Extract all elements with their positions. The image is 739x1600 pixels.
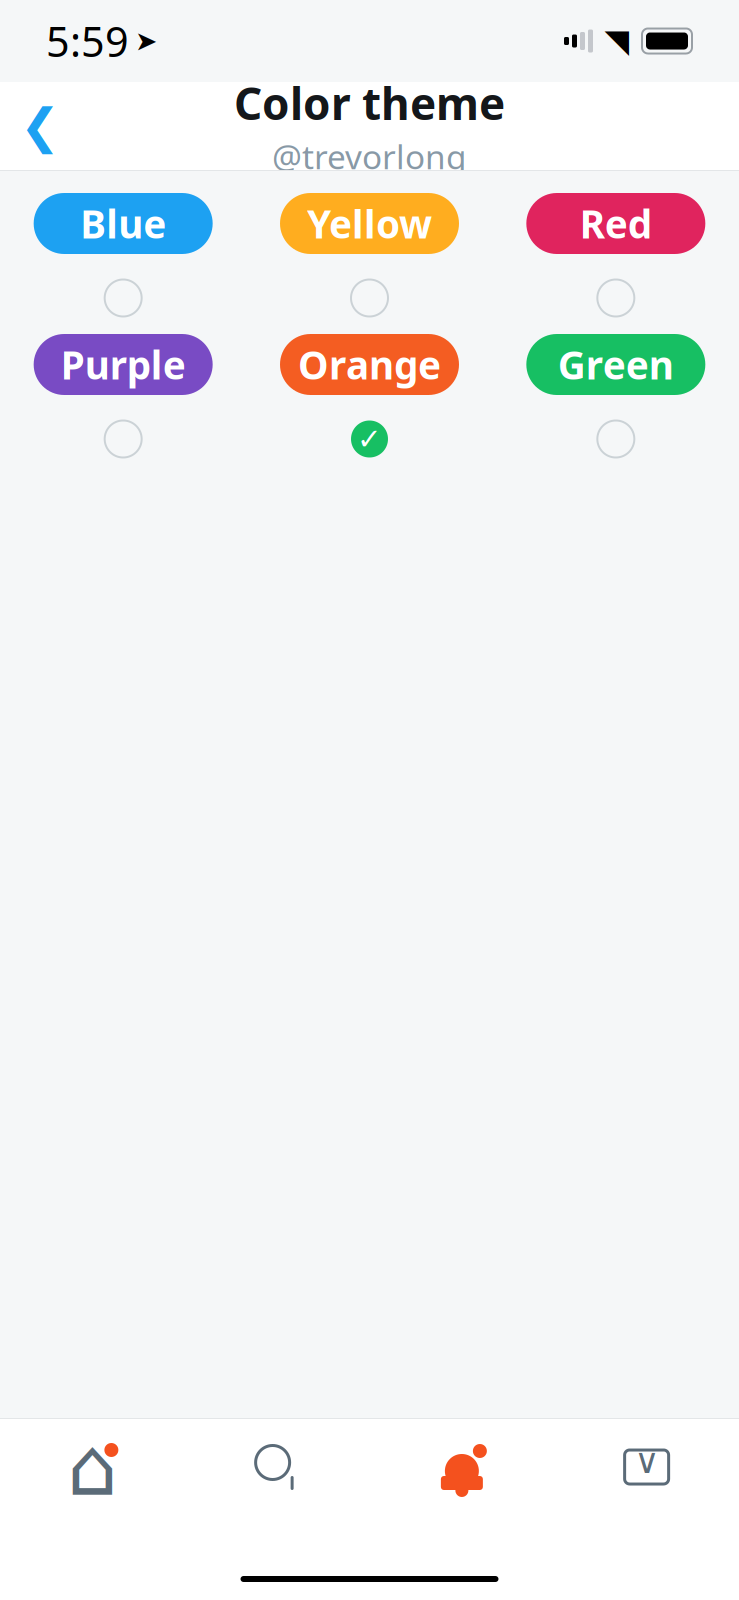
button[interactable]: Yellow xyxy=(280,193,459,254)
button[interactable]: Select Purple xyxy=(95,411,151,467)
button[interactable]: Select Blue xyxy=(95,270,151,326)
button[interactable]: Select Red xyxy=(588,270,644,326)
button[interactable]: Orange selected xyxy=(341,411,397,467)
button[interactable]: Select Yellow xyxy=(341,270,397,326)
button[interactable]: Home xyxy=(0,1441,185,1493)
staticText: Color theme xyxy=(234,74,505,132)
staticText: ∨ xyxy=(634,1441,659,1481)
staticText: Green xyxy=(558,339,674,390)
staticText: ⌂ xyxy=(67,1422,118,1512)
staticText: 5:59 xyxy=(46,14,129,68)
staticText: Red xyxy=(580,198,652,249)
button[interactable]: Orange xyxy=(280,334,459,395)
button[interactable]: Red xyxy=(526,193,705,254)
button[interactable]: Blue xyxy=(34,193,213,254)
staticText: Orange xyxy=(298,339,441,390)
staticText: ➤ xyxy=(135,26,157,56)
staticText: ✓ xyxy=(357,422,382,456)
button[interactable]: Select Green xyxy=(588,411,644,467)
button[interactable]: Search xyxy=(185,1441,370,1493)
staticText: Purple xyxy=(61,339,186,390)
staticText: ❮ xyxy=(20,99,60,153)
button[interactable]: Notifications xyxy=(369,1441,554,1493)
button[interactable]: Green xyxy=(526,334,705,395)
staticText: Blue xyxy=(80,198,166,249)
button[interactable]: Purple xyxy=(34,334,213,395)
staticText: Yellow xyxy=(307,198,432,249)
staticText: ◥ xyxy=(604,23,629,59)
staticText: @trevorlong xyxy=(272,134,467,178)
button[interactable]: Back xyxy=(0,86,80,166)
button[interactable]: Messages xyxy=(554,1441,739,1493)
